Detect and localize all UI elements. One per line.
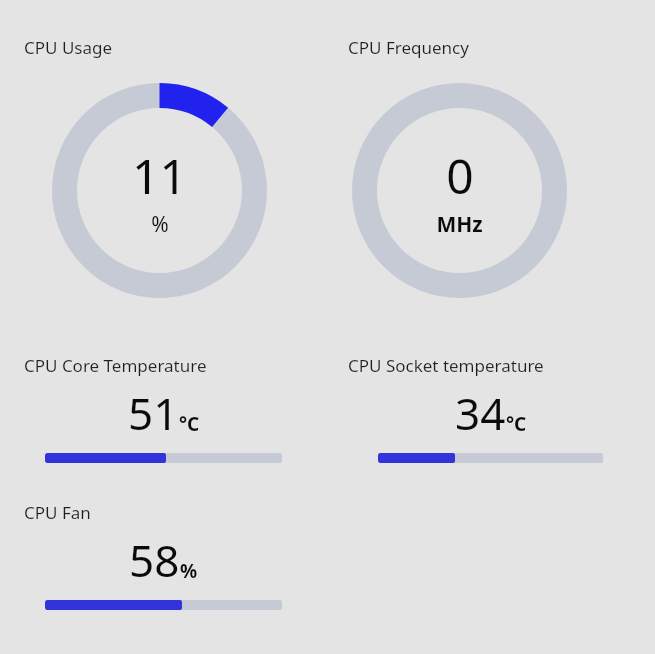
staticText: CPU Core Temperature xyxy=(24,354,207,377)
button[interactable]: CPU Frequency gauge 0 megahertz xyxy=(352,83,567,298)
staticText: °C xyxy=(506,411,527,437)
staticText: % xyxy=(180,558,198,584)
staticText: 58 xyxy=(129,530,180,590)
button[interactable]: CPU Usage gauge 11 percent xyxy=(52,83,267,298)
staticText: CPU Frequency xyxy=(348,36,469,59)
staticText: 0 xyxy=(446,143,474,208)
staticText: CPU Socket temperature xyxy=(348,354,544,377)
staticText: °C xyxy=(179,411,200,437)
staticText: 51 xyxy=(128,383,179,443)
staticText: 34 xyxy=(455,383,506,443)
staticText: CPU Fan xyxy=(24,501,91,524)
button[interactable]: CPU Usage xyxy=(0,36,324,298)
staticText: CPU Usage xyxy=(24,36,113,59)
staticText: MHz xyxy=(436,210,483,239)
button[interactable]: CPU Fan xyxy=(24,501,306,610)
button[interactable]: CPU Frequency xyxy=(324,36,655,298)
staticText: 11 xyxy=(132,143,187,208)
staticText: % xyxy=(151,210,169,239)
button[interactable]: CPU Socket temperature xyxy=(348,354,627,463)
button[interactable]: CPU Core Temperature xyxy=(24,354,306,463)
